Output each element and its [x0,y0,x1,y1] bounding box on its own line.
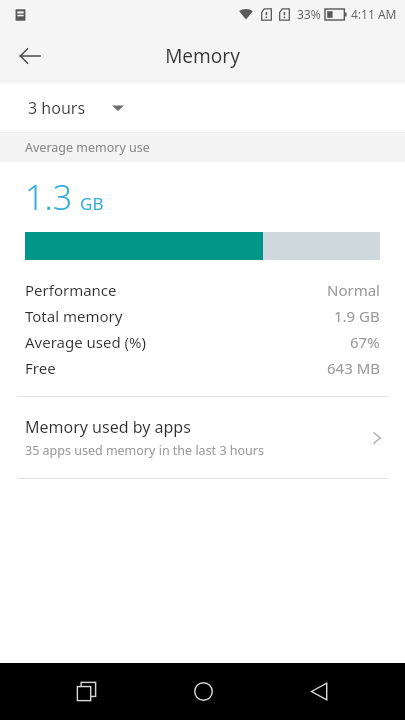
button[interactable]: Recent apps [55,663,117,720]
staticText: 33% [297,6,321,22]
staticText: Memory used by apps [25,416,191,438]
staticText: 67% [350,332,380,352]
staticText: Performance [25,280,117,300]
staticText: Memory [165,43,240,69]
staticText: 4:11 AM [351,6,397,22]
button[interactable]: Home [172,663,234,720]
staticText: Average used (%) [25,332,147,352]
staticText: Normal [327,280,380,300]
staticText: Free [25,358,56,378]
staticText: 1.9 GB [334,306,380,326]
staticText: GB [80,192,104,215]
staticText: 3 hours [28,97,86,119]
staticText: 643 MB [327,358,380,378]
staticText: Total memory [25,306,123,326]
button[interactable]: Memory used by apps [0,397,405,478]
staticText: Average memory use [25,139,150,156]
staticText: 35 apps used memory in the last 3 hours [25,442,264,459]
button[interactable]: 3 hours [28,83,124,132]
staticText: 1.3 [25,174,73,220]
button[interactable]: Back [288,663,350,720]
button[interactable]: Back [6,32,54,80]
